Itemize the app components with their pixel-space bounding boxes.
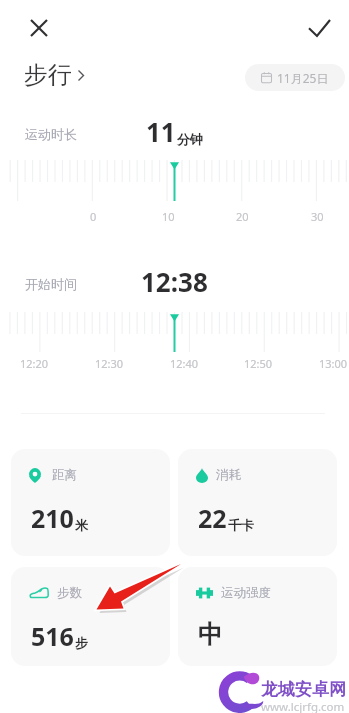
staticText: 20 — [236, 209, 249, 224]
staticText: www.lcjrfg.com — [261, 699, 345, 713]
staticText: 分钟 — [177, 131, 203, 147]
button[interactable]: Confirm — [303, 11, 336, 44]
staticText: 米 — [75, 517, 88, 533]
staticText: 12:50 — [244, 356, 273, 371]
button[interactable]: 运动强度 — [178, 567, 337, 666]
staticText: 22 — [198, 501, 227, 535]
staticText: 11月25日 — [277, 70, 329, 86]
staticText: 12:40 — [170, 356, 199, 371]
button[interactable]: 11月25日 — [245, 64, 345, 91]
staticText: 运动强度 — [221, 585, 271, 601]
staticText: 12:20 — [20, 356, 49, 371]
staticText: 10 — [162, 209, 175, 224]
staticText: 12:38 — [141, 264, 208, 299]
button[interactable]: Close — [22, 11, 55, 44]
staticText: 0 — [90, 209, 97, 224]
staticText: 开始时间 — [25, 276, 77, 292]
staticText: 中 — [198, 619, 223, 650]
button[interactable]: 距离 — [11, 449, 170, 556]
button[interactable]: 消耗 — [178, 449, 337, 556]
staticText: 12:30 — [95, 356, 124, 371]
staticText: 距离 — [52, 467, 77, 483]
staticText: 11 — [146, 114, 176, 149]
staticText: 516 — [31, 619, 74, 653]
staticText: 千卡 — [228, 517, 254, 533]
staticText: 龙城安卓网 — [261, 679, 346, 700]
staticText: 运动时长 — [25, 126, 77, 142]
button[interactable]: 步行 — [24, 60, 84, 90]
staticText: 消耗 — [216, 467, 241, 483]
staticText: 30 — [311, 209, 324, 224]
staticText: 步 — [75, 635, 88, 651]
staticText: 步数 — [57, 585, 82, 601]
staticText: 13:00 — [319, 356, 348, 371]
staticText: 210 — [31, 501, 74, 535]
button[interactable]: 步数 — [11, 567, 170, 666]
staticText: 步行 — [24, 60, 72, 90]
